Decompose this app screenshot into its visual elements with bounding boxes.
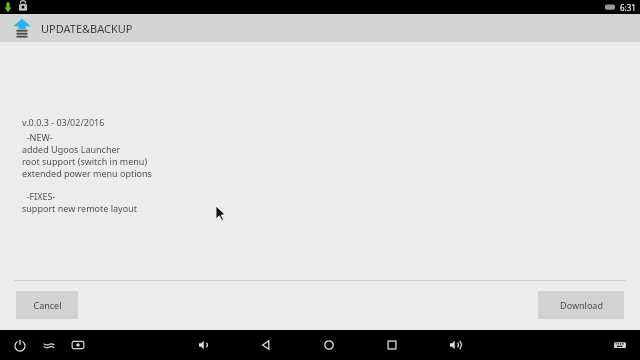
staticText: added Ugoos Launcher (22, 143, 121, 155)
button[interactable]: Keyboard (606, 330, 634, 360)
staticText: root support (switch in menu) (22, 155, 148, 167)
button[interactable]: Download (538, 291, 624, 319)
button[interactable]: Volume up (441, 330, 469, 360)
button[interactable]: Recents (378, 330, 406, 360)
button[interactable]: Screenshot (64, 330, 92, 360)
staticText: -FIXES- (22, 190, 56, 202)
staticText: Download (560, 299, 603, 311)
staticText: 6:31 (620, 2, 636, 13)
button[interactable]: Quick settings (35, 330, 63, 360)
staticText: UPDATE&BACKUP (41, 21, 133, 36)
staticText: v.0.0.3 - 03/02/2016 (22, 116, 105, 128)
staticText: Cancel (33, 299, 62, 311)
button[interactable]: Home (315, 330, 343, 360)
button[interactable]: Back (252, 330, 280, 360)
staticText: support new remote layout (22, 202, 137, 214)
button[interactable]: Volume down (190, 330, 218, 360)
staticText: -NEW- (22, 131, 53, 143)
staticText: extended power menu options (22, 167, 152, 179)
button[interactable]: Power (6, 330, 34, 360)
button[interactable]: Cancel (16, 291, 78, 319)
